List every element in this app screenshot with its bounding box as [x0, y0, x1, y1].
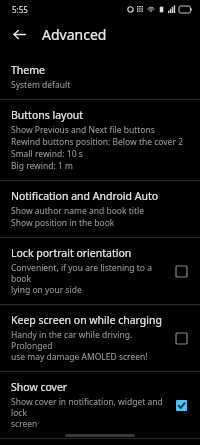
staticText: Rewind buttons position: Below the cover…	[11, 136, 183, 148]
button[interactable]: Back	[4, 19, 34, 49]
button[interactable]: Theme	[0, 55, 200, 99]
button[interactable]: Buttons layout	[0, 100, 200, 180]
button[interactable]: Notification and Android Auto	[0, 181, 200, 237]
staticText: Show Previous and Next file buttons	[11, 124, 155, 136]
staticText: Show cover in notification, widget and l…	[11, 396, 164, 418]
staticText: use may damage AMOLED screen!	[11, 351, 148, 363]
button[interactable]: Lock portrait orientation	[170, 260, 192, 282]
staticText: lying on your side	[11, 284, 82, 296]
button[interactable]: Show cover	[170, 394, 192, 416]
staticText: Keep screen on while charging	[11, 313, 162, 327]
staticText: screen	[11, 418, 38, 430]
button[interactable]: Show cover	[0, 372, 200, 438]
staticText: 5:55	[12, 4, 28, 15]
staticText: Show position in the book	[11, 217, 115, 229]
staticText: Handy in the car while driving. Prolonge…	[11, 329, 164, 351]
staticText: Advanced	[42, 25, 107, 44]
button[interactable]: Keep screen on while charging	[170, 327, 192, 349]
staticText: Show author name and book title	[11, 205, 145, 217]
staticText: Big rewind: 1 m	[11, 160, 73, 172]
staticText: Convenient, if you are listening to a bo…	[11, 262, 164, 284]
staticText: Lock portrait orientation	[11, 246, 132, 260]
staticText: Notification and Android Auto	[11, 189, 159, 203]
staticText: Small rewind: 10 s	[11, 148, 83, 160]
staticText: Theme	[11, 63, 45, 77]
staticText: System default	[11, 79, 71, 91]
button[interactable]: Keep screen on while charging	[0, 305, 200, 371]
staticText: Buttons layout	[11, 108, 84, 122]
button[interactable]: Lock portrait orientation	[0, 238, 200, 304]
staticText: Show cover	[11, 380, 68, 394]
